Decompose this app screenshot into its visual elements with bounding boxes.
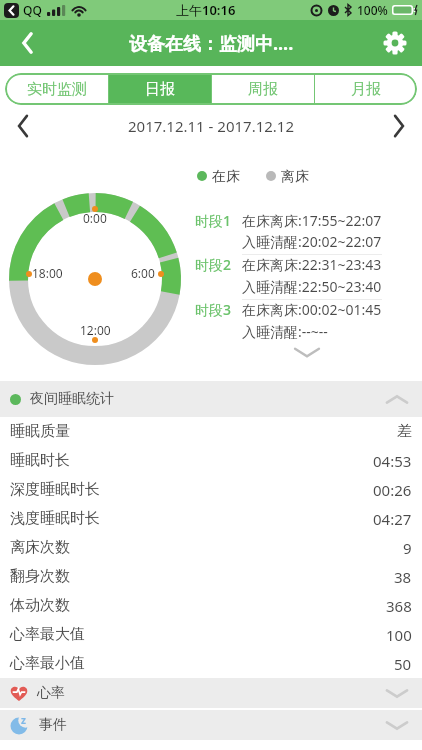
- button[interactable]: 周报: [212, 73, 314, 105]
- staticText: 2017.12.11 - 2017.12.12: [128, 116, 294, 136]
- staticText: 在床离床:00:02~01:45: [242, 300, 382, 319]
- staticText: 心率: [37, 684, 65, 702]
- staticText: 0:00: [83, 210, 107, 226]
- button[interactable]: 睡眠时长: [0, 446, 422, 475]
- button[interactable]: 心率最小值: [0, 649, 422, 678]
- staticText: 00:26: [373, 480, 412, 500]
- staticText: 翻身次数: [10, 567, 70, 586]
- staticText: 100: [386, 625, 412, 645]
- button[interactable]: 夜间睡眠统计: [0, 381, 422, 417]
- staticText: 在床离床:22:31~23:43: [242, 255, 382, 274]
- staticText: 心率最小值: [10, 654, 85, 673]
- staticText: 在床: [212, 168, 240, 184]
- staticText: 离床次数: [10, 538, 70, 557]
- staticText: 月报: [351, 80, 381, 99]
- button[interactable]: 心率最大值: [0, 620, 422, 649]
- staticText: 04:53: [373, 451, 412, 471]
- staticText: 体动次数: [10, 596, 70, 615]
- button[interactable]: 心率: [0, 678, 422, 708]
- staticText: 50: [394, 654, 412, 674]
- button[interactable]: 深度睡眠时长: [0, 475, 422, 504]
- button[interactable]: z: [0, 710, 422, 740]
- button[interactable]: [384, 111, 414, 141]
- button[interactable]: 日报: [109, 73, 211, 105]
- staticText: 实时监测: [27, 80, 87, 99]
- staticText: 上午10:16: [176, 1, 236, 19]
- button[interactable]: 离床次数: [0, 533, 422, 562]
- button[interactable]: [10, 26, 44, 60]
- staticText: 浅度睡眠时长: [10, 509, 100, 528]
- staticText: 38: [394, 567, 412, 587]
- staticText: 368: [386, 596, 412, 616]
- button[interactable]: [380, 28, 410, 58]
- staticText: 周报: [248, 80, 278, 99]
- staticText: 6:00: [131, 265, 155, 281]
- button[interactable]: [8, 111, 38, 141]
- staticText: 深度睡眠时长: [10, 480, 100, 499]
- staticText: 入睡清醒:22:50~23:40: [242, 277, 382, 296]
- button[interactable]: 实时监测: [5, 73, 108, 105]
- button[interactable]: 睡眠质量: [0, 417, 422, 446]
- staticText: 18:00: [32, 265, 63, 281]
- staticText: 入睡清醒:20:02~22:07: [242, 232, 382, 251]
- staticText: 入睡清醒:--~--: [242, 322, 328, 341]
- staticText: 9: [403, 538, 412, 558]
- staticText: 日报: [145, 80, 175, 99]
- staticText: 时段1: [195, 211, 232, 230]
- staticText: 04:27: [373, 509, 412, 529]
- staticText: QQ: [23, 2, 42, 18]
- staticText: 心率最大值: [10, 625, 85, 644]
- staticText: 事件: [39, 716, 67, 734]
- staticText: 夜间睡眠统计: [30, 390, 114, 408]
- staticText: 设备在线：监测中....: [129, 31, 294, 56]
- staticText: 时段3: [195, 300, 232, 319]
- staticText: 12:00: [80, 322, 111, 338]
- staticText: z: [21, 713, 26, 727]
- button[interactable]: [292, 345, 322, 359]
- button[interactable]: 浅度睡眠时长: [0, 504, 422, 533]
- button[interactable]: 体动次数: [0, 591, 422, 620]
- staticText: 差: [397, 422, 412, 441]
- button[interactable]: 月报: [315, 73, 417, 105]
- staticText: 100%: [357, 2, 388, 18]
- staticText: 在床离床:17:55~22:07: [242, 211, 382, 230]
- staticText: 时段2: [195, 255, 232, 274]
- staticText: 离床: [281, 168, 309, 184]
- button[interactable]: 翻身次数: [0, 562, 422, 591]
- staticText: 睡眠时长: [10, 451, 70, 470]
- staticText: 睡眠质量: [10, 422, 70, 441]
